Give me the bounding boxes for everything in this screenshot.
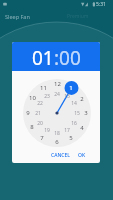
- button[interactable]: CANCEL: [49, 149, 72, 162]
- staticText: 11: [40, 84, 47, 92]
- staticText: 5:31: [96, 1, 106, 8]
- button[interactable]: 01: [32, 45, 54, 71]
- staticText: 17: [64, 127, 70, 134]
- staticText: 14: [71, 100, 77, 107]
- staticText: 23: [44, 93, 50, 100]
- staticText: CANCEL: [51, 152, 70, 159]
- staticText: OK: [78, 152, 86, 159]
- staticText: 7: [40, 134, 44, 142]
- button[interactable]: Premium: [65, 11, 91, 22]
- staticText: 20: [37, 120, 43, 127]
- staticText: 3: [84, 109, 88, 117]
- staticText: 6: [55, 138, 59, 146]
- staticText: Premium: [67, 13, 89, 20]
- button[interactable]: OK: [76, 149, 88, 162]
- staticText: 18: [54, 130, 60, 137]
- staticText: 22: [37, 100, 43, 107]
- staticText: 2: [80, 95, 84, 103]
- staticText: 1: [69, 84, 73, 92]
- staticText: 10: [29, 94, 36, 102]
- staticText: 16: [71, 120, 77, 127]
- staticText: 15: [74, 110, 80, 117]
- staticText: 8: [30, 123, 34, 131]
- staticText: 4: [80, 124, 84, 132]
- staticText: 13: [64, 93, 70, 100]
- button[interactable]: :00: [54, 45, 81, 71]
- staticText: 9: [26, 109, 30, 117]
- staticText: 19: [44, 127, 50, 134]
- staticText: 5: [69, 134, 73, 142]
- staticText: Sleep Fan: [5, 13, 30, 20]
- staticText: 21: [35, 110, 41, 117]
- staticText: 12: [54, 80, 61, 88]
- staticText: 24: [54, 91, 60, 98]
